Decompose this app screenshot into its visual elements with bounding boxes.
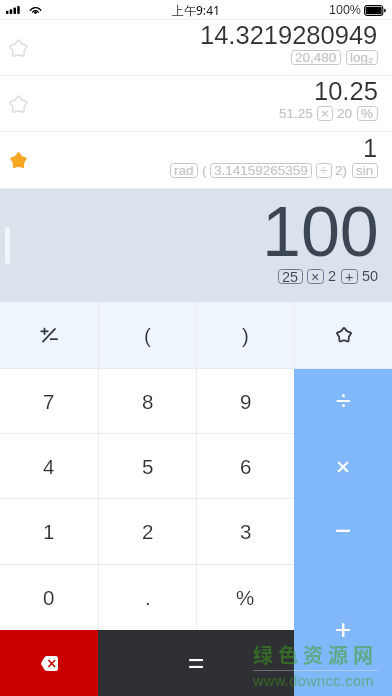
staticText: 上午9:41 <box>172 2 220 18</box>
staticText: 50 <box>362 268 379 284</box>
button[interactable]: 10.25 <box>0 76 392 132</box>
staticText: = <box>188 648 205 679</box>
staticText: × <box>336 453 351 480</box>
button[interactable]: 1 <box>0 499 98 564</box>
staticText: rad <box>174 163 194 178</box>
button[interactable]: 7 <box>0 369 98 433</box>
staticText: + <box>345 269 354 284</box>
staticText: × <box>311 269 320 284</box>
staticText: % <box>361 106 374 121</box>
button[interactable]: 5 <box>99 434 196 498</box>
staticText: 14.3219280949 <box>200 21 378 49</box>
staticText: 绿色资源网 <box>253 640 378 669</box>
button[interactable]: ÷ <box>294 369 392 433</box>
staticText: 6 <box>240 455 252 478</box>
button[interactable]: 1 <box>0 132 392 189</box>
button[interactable]: − <box>294 498 392 563</box>
staticText: 20 <box>337 106 353 121</box>
staticText: × <box>321 106 329 121</box>
button[interactable]: 8 <box>99 369 196 433</box>
button[interactable]: Delete <box>0 630 98 696</box>
staticText: 1 <box>43 520 55 543</box>
button[interactable]: 6 <box>197 434 294 498</box>
button[interactable]: . <box>99 565 196 630</box>
staticText: 2) <box>335 163 348 178</box>
staticText: log₂ <box>350 50 374 65</box>
staticText: % <box>236 586 255 609</box>
button[interactable]: 9 <box>197 369 294 433</box>
staticText: 25 <box>282 269 299 284</box>
staticText: 3.14159265359 <box>214 163 308 178</box>
staticText: sin <box>356 163 374 178</box>
staticText: 100% <box>329 3 361 17</box>
button[interactable]: Favorite <box>295 302 392 368</box>
button[interactable]: ) <box>197 302 294 368</box>
staticText: + <box>335 614 352 645</box>
button[interactable]: = <box>98 630 294 696</box>
button[interactable]: 3 <box>197 499 294 564</box>
staticText: ÷ <box>336 386 351 416</box>
staticText: 4 <box>43 455 55 478</box>
staticText: 2 <box>142 520 154 543</box>
staticText: ) <box>242 324 249 347</box>
button[interactable]: 0 <box>0 565 98 630</box>
staticText: 7 <box>43 390 55 413</box>
staticText: 10.25 <box>314 77 378 105</box>
staticText: ÷ <box>320 163 328 178</box>
staticText: ( <box>144 324 151 347</box>
staticText: 51.25 <box>279 106 313 121</box>
button[interactable]: % <box>197 565 294 630</box>
staticText: 9 <box>240 390 252 413</box>
staticText: 0 <box>43 586 55 609</box>
staticText: . <box>145 586 151 609</box>
button[interactable]: 14.3219280949 <box>0 20 392 76</box>
button[interactable]: + <box>294 563 392 696</box>
staticText: 2 <box>328 268 337 284</box>
staticText: 100 <box>262 193 379 271</box>
staticText: 3 <box>240 520 252 543</box>
button[interactable]: 2 <box>99 499 196 564</box>
button[interactable]: Plus minus <box>0 302 98 368</box>
button[interactable]: 4 <box>0 434 98 498</box>
button[interactable]: ( <box>99 302 196 368</box>
staticText: 1 <box>363 134 378 162</box>
staticText: ( <box>202 163 207 178</box>
staticText: − <box>335 515 352 546</box>
staticText: 20,480 <box>295 50 337 65</box>
staticText: 8 <box>142 390 154 413</box>
button[interactable]: × <box>294 433 392 498</box>
staticText: 5 <box>142 455 154 478</box>
staticText: www.downcc.com <box>253 673 374 689</box>
